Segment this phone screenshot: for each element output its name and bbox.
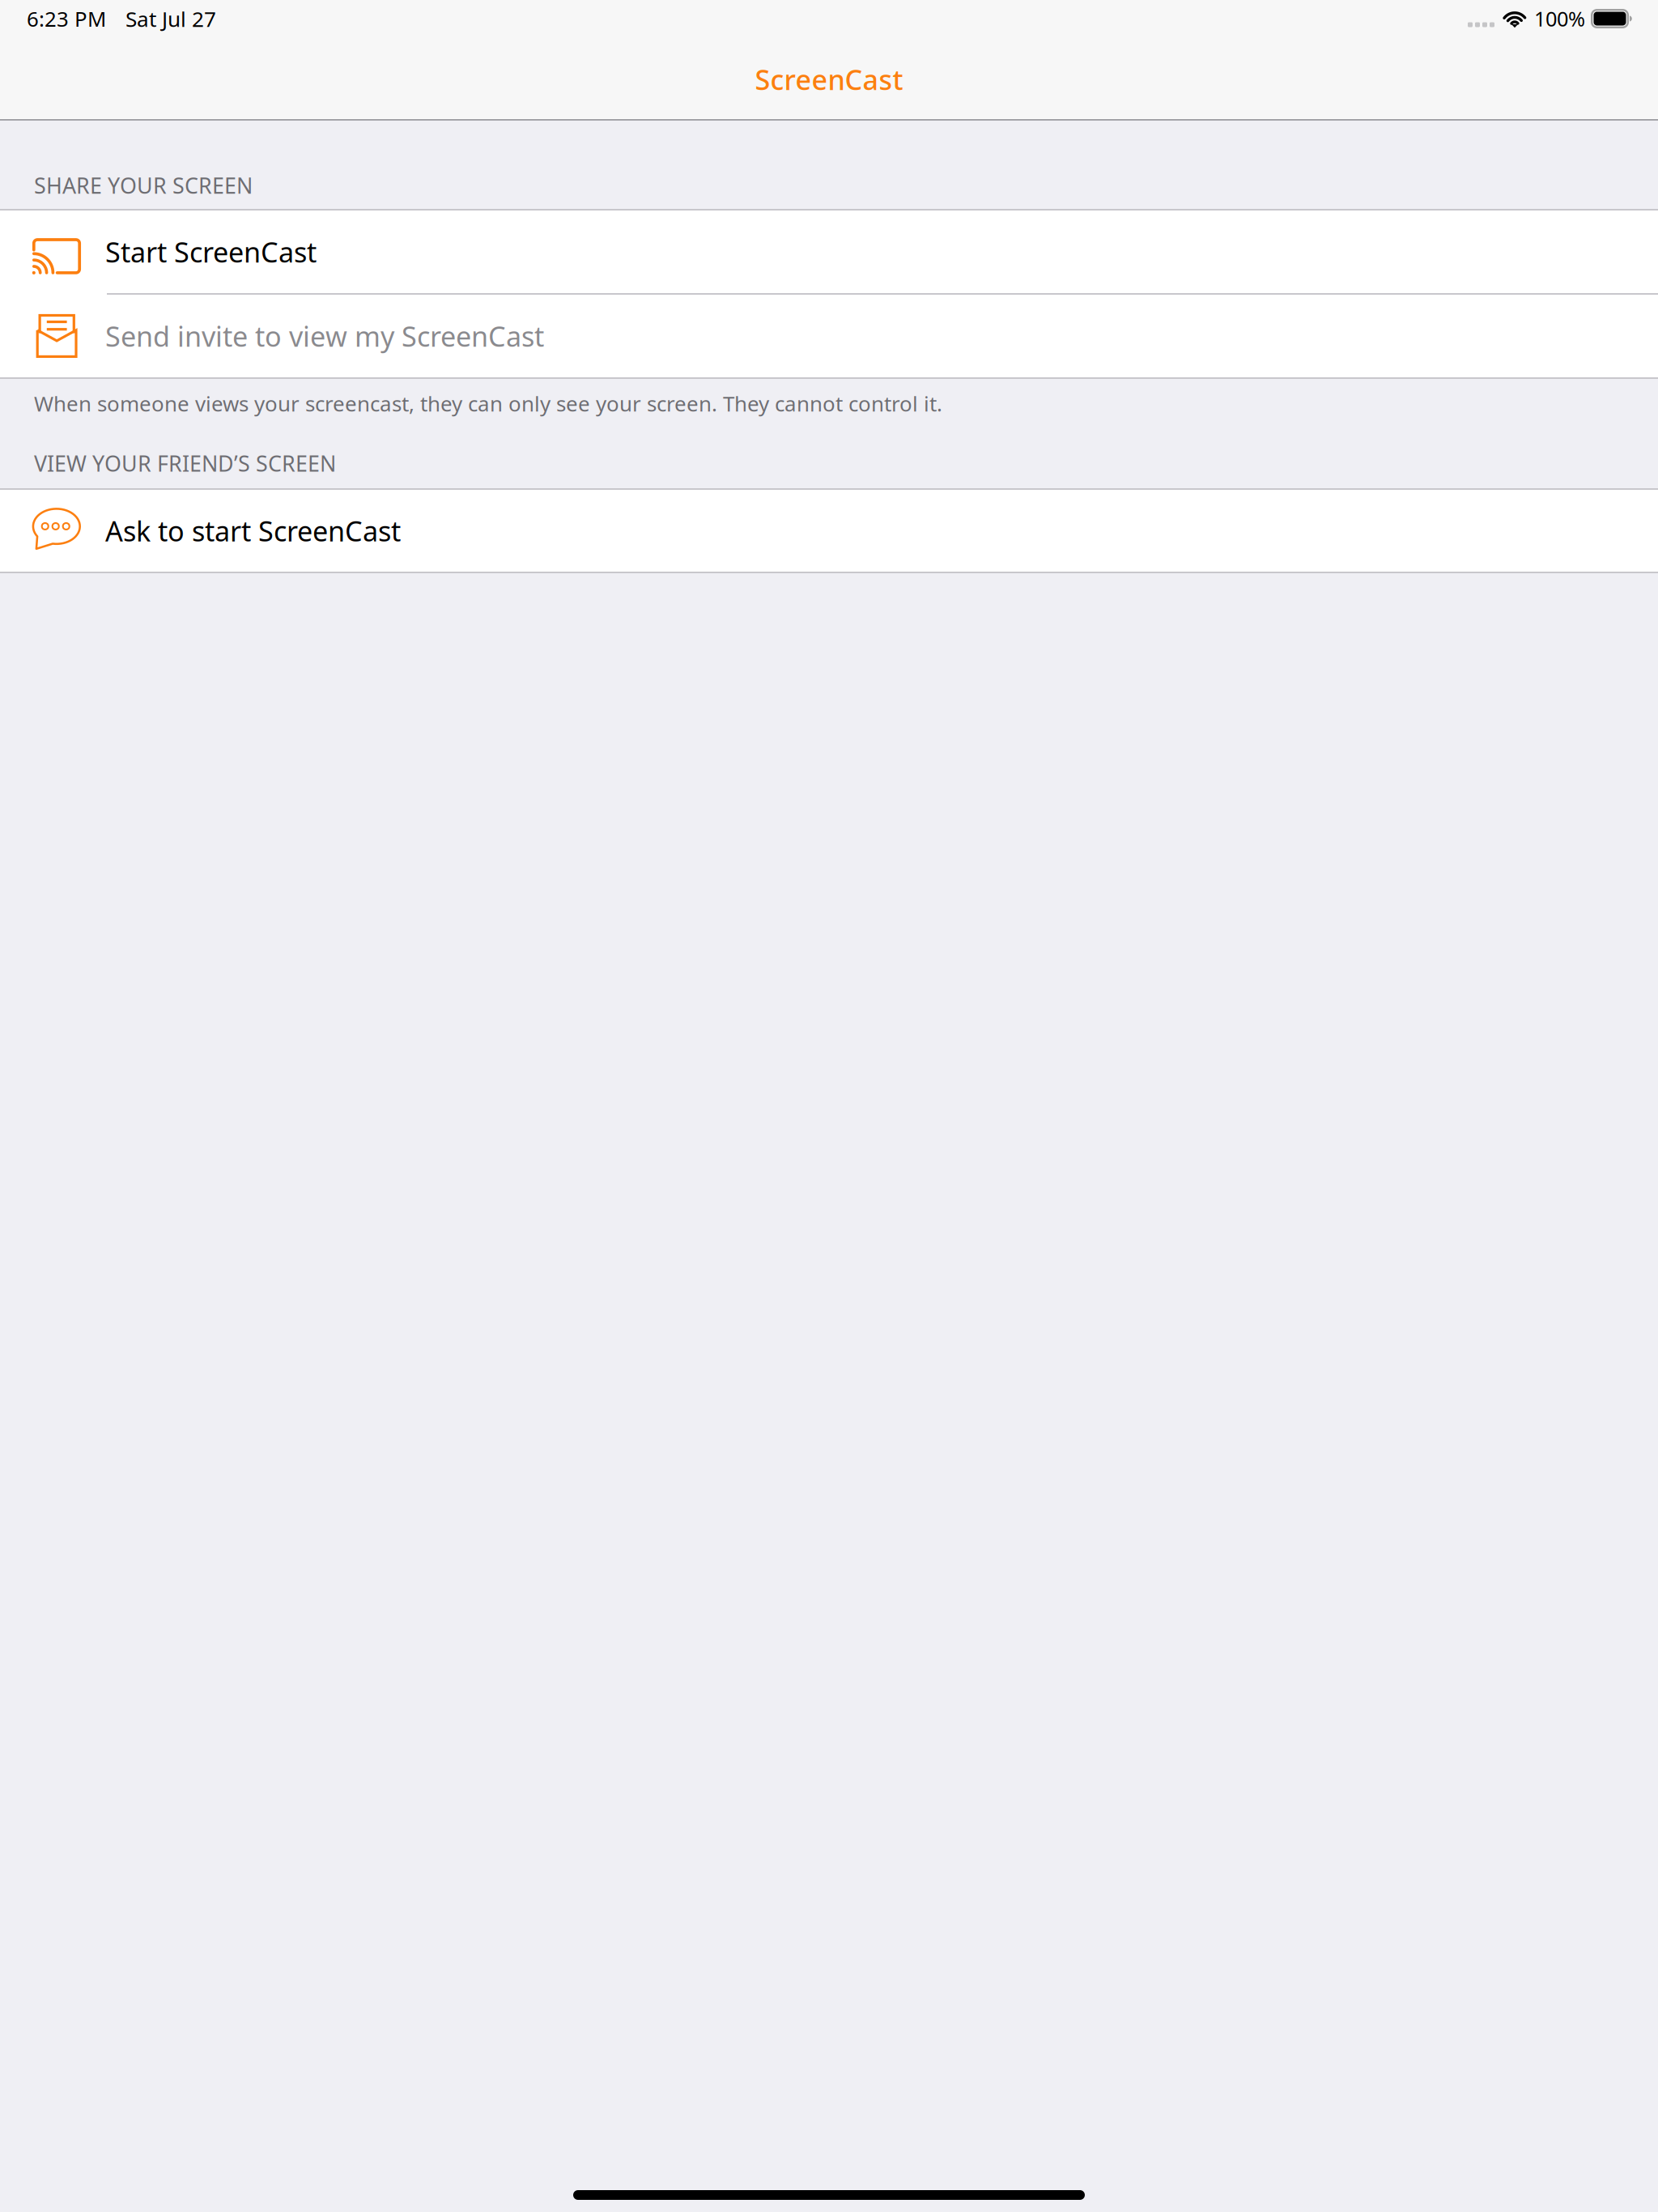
staticText: When someone views your screencast, they… [34,389,942,417]
button[interactable]: Start ScreenCast [0,211,1658,295]
staticText: Start ScreenCast [105,233,317,270]
staticText: Ask to start ScreenCast [105,512,401,549]
button[interactable]: Send invite to view my ScreenCast [0,295,1658,377]
staticText: ScreenCast [755,61,903,98]
staticText: Sat Jul 27 [125,5,216,33]
staticText: 100% [1534,5,1585,32]
staticText: SHARE YOUR SCREEN [34,171,253,200]
staticText: 6:23 PM [27,5,106,32]
button[interactable]: Ask to start ScreenCast [0,490,1658,572]
staticText: Send invite to view my ScreenCast [105,318,544,354]
staticText: VIEW YOUR FRIEND’S SCREEN [34,449,336,478]
